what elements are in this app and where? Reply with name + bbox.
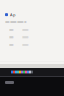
button[interactable]: App 6 [21,70,23,73]
button[interactable]: App 2 [13,70,15,73]
button[interactable]: App 5 [19,70,21,73]
button[interactable]: App 8 [25,70,27,73]
button[interactable]: App 11 [31,70,33,73]
staticText: aaaa [9,28,13,31]
staticText: aaaa [9,35,13,39]
button[interactable]: App 10 [29,70,31,73]
staticText: aaaa [9,43,13,46]
button[interactable]: App 7 [23,70,25,73]
staticText: aaaa aaaaaa aaaaaa aa [5,20,26,24]
button[interactable]: App 3 [15,70,17,73]
staticText: aaaaaa [22,35,28,39]
staticText: aaaaaa [22,28,28,31]
button[interactable]: App 9 [27,70,29,73]
staticText: Ap [10,12,15,17]
button[interactable]: Ap [0,12,64,17]
button[interactable]: App 1 [11,70,13,73]
staticText: aaaaaa [22,43,28,46]
button[interactable]: App 4 [17,70,19,73]
